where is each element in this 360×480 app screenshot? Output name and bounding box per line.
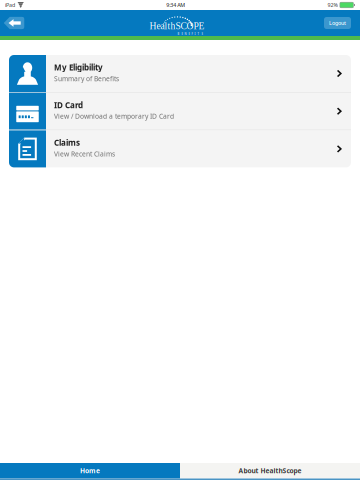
button[interactable]: Back [2, 13, 26, 33]
staticText: View / Download a temporary ID Card [54, 112, 174, 121]
button[interactable]: ID Card [9, 93, 351, 130]
button[interactable]: About HealthScope [180, 463, 360, 478]
button[interactable]: Home [0, 463, 180, 478]
staticText: HealthSCOPE [149, 21, 204, 31]
staticText: View Recent Claims [54, 149, 115, 158]
staticText: 92% [327, 1, 337, 9]
button[interactable]: Claims [9, 130, 351, 167]
staticText: B E N E F I T S [177, 32, 202, 36]
staticText: Logout [329, 19, 346, 27]
staticText: About HealthScope [238, 466, 301, 475]
staticText: Claims [54, 137, 80, 148]
button[interactable]: My Eligibility [9, 55, 351, 92]
button[interactable]: Logout [324, 17, 351, 29]
staticText: iPad [5, 1, 15, 9]
staticText: My Eligibility [54, 62, 103, 73]
staticText: Home [80, 466, 100, 475]
staticText: 9:34 AM [166, 1, 185, 9]
staticText: ID Card [54, 100, 83, 110]
staticText: Summary of Benefits [54, 74, 119, 83]
